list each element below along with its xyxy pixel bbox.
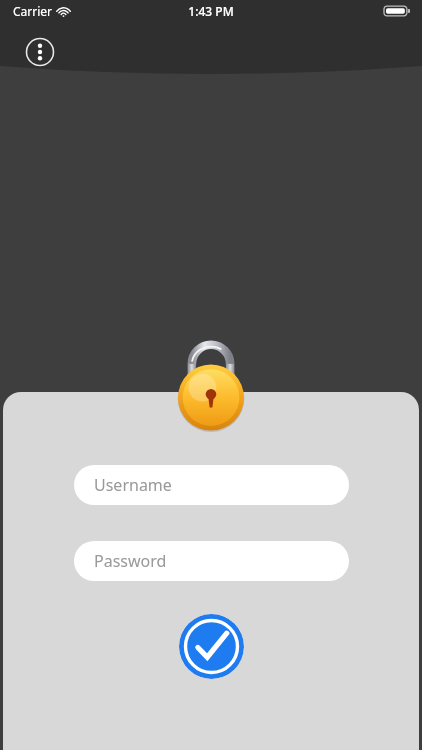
staticText: Password — [94, 550, 167, 572]
button[interactable]: Username — [74, 465, 349, 505]
button[interactable]: More options — [25, 37, 55, 67]
button[interactable]: Password — [74, 541, 349, 581]
staticText: 1:43 PM — [188, 3, 234, 19]
button[interactable]: Submit — [179, 614, 244, 679]
staticText: Username — [94, 474, 172, 496]
staticText: Carrier — [13, 3, 53, 19]
